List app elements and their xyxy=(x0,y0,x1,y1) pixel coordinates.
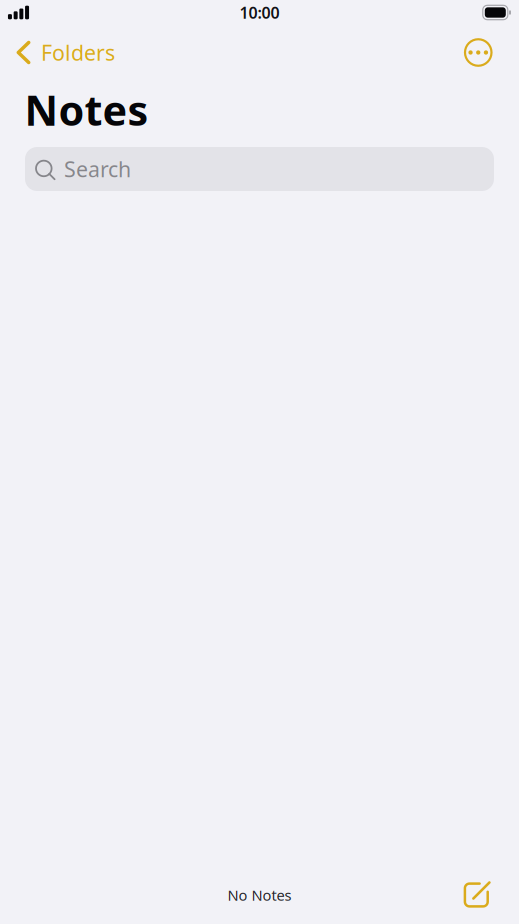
staticText: 10:00 xyxy=(239,2,279,23)
staticText: Search xyxy=(64,155,131,183)
staticText: No Notes xyxy=(227,885,291,905)
staticText: Notes xyxy=(24,82,148,137)
button[interactable]: New Note xyxy=(448,872,519,918)
button[interactable]: Search xyxy=(25,147,494,191)
button[interactable]: More xyxy=(453,32,519,73)
staticText: Folders xyxy=(41,38,115,67)
button[interactable]: Folders xyxy=(0,31,123,74)
